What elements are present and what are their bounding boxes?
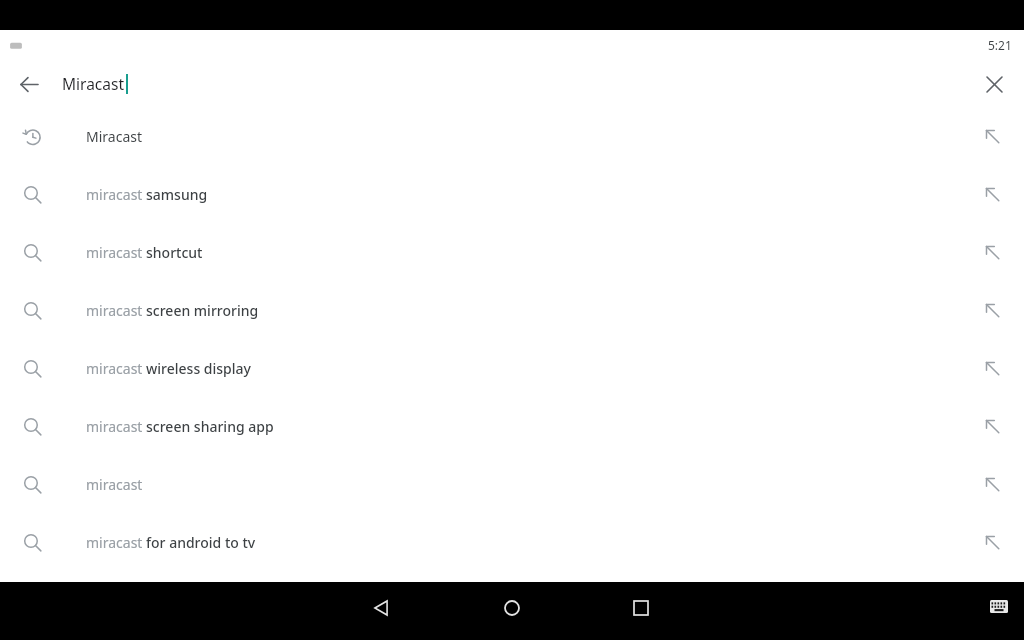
button[interactable]: Insert suggestion bbox=[952, 455, 1024, 513]
button[interactable]: Recent apps bbox=[625, 592, 657, 624]
button[interactable]: Miracast bbox=[0, 107, 1024, 165]
button[interactable]: Insert suggestion bbox=[952, 223, 1024, 281]
button[interactable]: Insert suggestion bbox=[952, 513, 1024, 571]
button[interactable]: miracast samsung bbox=[0, 165, 1024, 223]
staticText: miracast wireless display bbox=[86, 359, 251, 378]
button[interactable]: miracast wireless display bbox=[0, 339, 1024, 397]
button[interactable]: miracast screen sharing app bbox=[0, 397, 1024, 455]
staticText: Miracast bbox=[62, 73, 125, 94]
staticText: Miracast bbox=[86, 127, 142, 146]
button[interactable]: miracast bbox=[0, 455, 1024, 513]
staticText: miracast shortcut bbox=[86, 243, 203, 262]
staticText: miracast screen sharing app bbox=[86, 417, 274, 436]
button[interactable]: Insert suggestion bbox=[952, 339, 1024, 397]
staticText: miracast samsung bbox=[86, 185, 208, 204]
staticText: miracast bbox=[86, 475, 143, 494]
button[interactable]: miracast screen mirroring bbox=[0, 281, 1024, 339]
button[interactable]: Switch keyboard bbox=[986, 593, 1012, 619]
staticText: miracast screen mirroring bbox=[86, 301, 259, 320]
staticText: miracast for android to tv bbox=[86, 533, 256, 552]
button[interactable]: Clear query bbox=[976, 66, 1012, 102]
staticText: 5:21 bbox=[988, 37, 1012, 53]
button[interactable]: miracast for android to tv bbox=[0, 513, 1024, 571]
button[interactable]: Back bbox=[365, 592, 397, 624]
button[interactable]: Insert suggestion bbox=[952, 165, 1024, 223]
button[interactable]: Back bbox=[12, 67, 46, 101]
button[interactable]: Insert suggestion bbox=[952, 281, 1024, 339]
button[interactable]: Insert suggestion bbox=[952, 397, 1024, 455]
button[interactable]: miracast shortcut bbox=[0, 223, 1024, 281]
button[interactable]: Home bbox=[496, 592, 528, 624]
button[interactable]: Insert suggestion bbox=[952, 107, 1024, 165]
